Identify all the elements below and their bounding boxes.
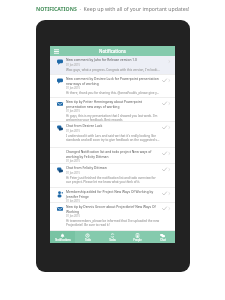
button[interactable]: Notifications [50,231,75,243]
button[interactable]: New tip by Petter Henningway about Power… [50,98,175,122]
button[interactable]: New tip by Dennis Grocer about Projectbr… [50,203,175,231]
staticText: NOTIFICATIONS · Keep up with all of your… [36,5,190,12]
staticText: 01 Jan 2015 [66,63,81,67]
button[interactable]: Open navigation menu [50,46,62,56]
staticText: Membership added for Project New Ways Of… [66,190,161,198]
staticText: 01 Jan 2015 [66,86,81,90]
button[interactable]: Chat [150,231,175,243]
staticText: I understood it with Lars and said we th… [66,134,161,142]
staticText: 01 Jan 2015 [66,109,81,113]
staticText: New comment by Desiree Luck for Powerpoi… [66,77,161,85]
staticText: People [133,238,142,242]
staticText: Hi Peter, just finished the notification… [66,176,161,184]
staticText: Tasks [109,238,116,242]
staticText: Chat from Desiree Luck [66,124,103,128]
staticText: New comment by Juho for Release version … [66,58,137,62]
button[interactable]: Tasks [100,231,125,243]
staticText: New tip by Dennis Grocer about Projectbr… [66,205,161,213]
staticText: 01 Jan 2015 [66,214,81,218]
staticText: Notifications [99,48,126,54]
button[interactable]: New comment by Desiree Luck for Powerpoi… [50,75,175,98]
staticText: 01 Jan 2015 [66,171,81,175]
button[interactable]: Membership added for Project New Ways Of… [50,188,175,203]
staticText: Chat from Felicity Dittman [66,166,107,170]
staticText: Changed Notification list and todo proje… [66,150,161,158]
staticText: Chat [160,238,166,242]
button[interactable]: New comment by Juho for Release version … [50,56,175,75]
button[interactable]: Chat from Felicity Dittman [50,164,175,188]
staticText: Todo [85,238,91,242]
staticText: Notifications [55,238,71,242]
button[interactable]: Chat from Desiree Luck [50,122,175,148]
button[interactable]: Todo [75,231,100,243]
staticText: 01 Jan 2015 [66,159,81,163]
staticText: 01 Jan 2015 [66,129,81,133]
staticText: Hi guys, this is my presentation that I … [66,114,161,122]
staticText: New tip by Petter Henningway about Power… [66,100,161,108]
staticText: Hi there, thank you for sharing this. @a… [66,91,161,95]
button[interactable]: Changed Notification list and todo proje… [50,148,175,164]
staticText: Hi teammembers, please be informed that … [66,219,161,227]
staticText: Woo guys, what a progress. Congrats with… [66,68,161,72]
button[interactable]: People [125,231,150,243]
staticText: 01 Jan 2015 [66,199,81,203]
